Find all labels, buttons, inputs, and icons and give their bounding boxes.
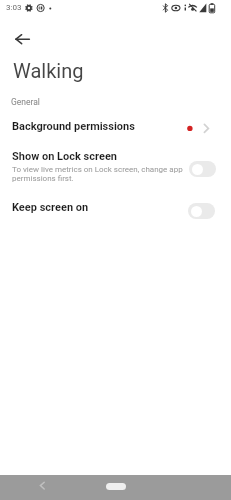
button[interactable] [8,26,36,54]
staticText: Walking [13,59,84,82]
button[interactable] [28,475,54,500]
staticText: Keep screen on [12,201,89,214]
staticText: Background permissions [12,120,135,133]
staticText: 3:03 [6,3,22,12]
staticText: General [11,97,40,107]
staticText: To view live metrics on Lock screen, cha… [12,165,192,183]
button[interactable] [106,483,126,490]
button[interactable]: Show on Lock screen [0,142,231,190]
button[interactable] [188,203,215,219]
button[interactable]: Keep screen on [0,190,231,230]
button[interactable] [189,161,216,177]
staticText: Show on Lock screen [12,150,117,163]
button[interactable]: Background permissions [0,112,231,142]
